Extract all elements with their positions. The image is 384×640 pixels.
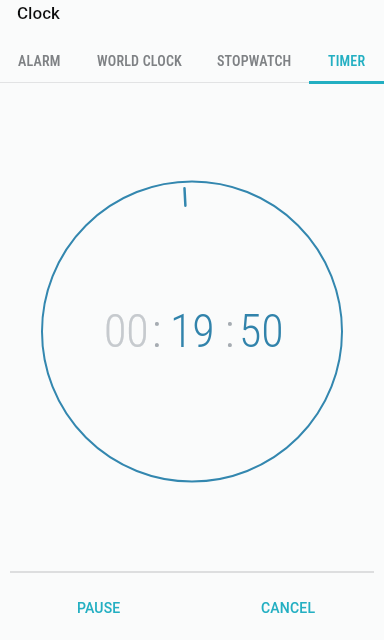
staticText: : [152, 304, 162, 358]
staticText: 50 [239, 304, 284, 358]
button[interactable]: ALARM [0, 48, 79, 84]
staticText: PAUSE [77, 600, 121, 616]
staticText: TIMER [328, 53, 366, 69]
staticText: Clock [17, 3, 60, 23]
staticText: WORLD CLOCK [97, 53, 182, 69]
button[interactable]: STOPWATCH [200, 48, 309, 84]
button[interactable]: PAUSE [0, 573, 192, 640]
staticText: STOPWATCH [217, 53, 292, 69]
button[interactable]: TIMER [309, 48, 384, 84]
staticText: CANCEL [261, 600, 316, 616]
staticText: 00 [104, 304, 149, 358]
button[interactable]: CANCEL [192, 573, 384, 640]
staticText: 19 [170, 304, 215, 358]
button[interactable]: WORLD CLOCK [79, 48, 200, 84]
staticText: : [225, 304, 235, 358]
staticText: ALARM [18, 53, 61, 69]
